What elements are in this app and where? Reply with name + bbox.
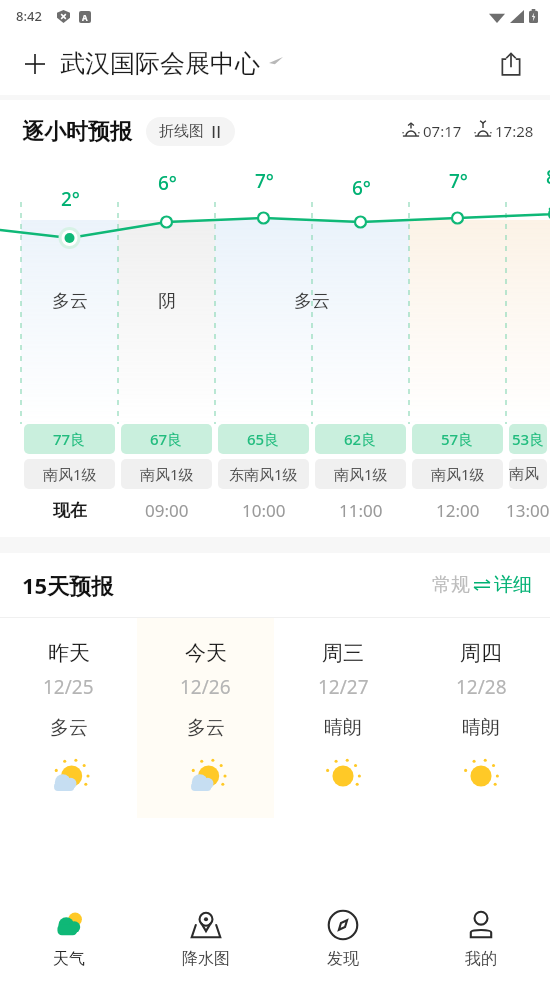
staticText: 昨天 [48,640,90,666]
staticText: 发现 [327,949,359,969]
staticText: 多云 [52,290,88,313]
staticText: 晴朗 [462,716,500,740]
staticText: 南风1级 [140,464,194,484]
staticText: 晴朗 [324,716,362,740]
staticText: 12:00 [436,499,480,522]
staticText: 12/26 [180,674,231,700]
staticText: 11:00 [339,499,383,522]
staticText: A [82,12,88,23]
staticText: 阴 [158,290,176,313]
button[interactable]: 今天 [137,618,274,818]
button[interactable]: 周四 [412,618,550,818]
staticText: 8:42 [16,7,42,25]
button[interactable]: 折线图 [146,117,235,146]
staticText: 详细 [494,573,532,597]
button[interactable]: Share [490,43,532,85]
staticText: 天气 [53,949,85,969]
button[interactable]: 常规 [432,573,532,597]
staticText: 15天预报 [22,570,114,600]
staticText: 10:00 [242,499,286,522]
button[interactable]: 我的 [412,894,550,982]
button[interactable]: 昨天 [0,618,137,818]
staticText: 09:00 [145,499,189,522]
button[interactable]: 周三 [274,618,412,818]
staticText: 武汉国际会展中心 [60,48,260,79]
staticText: 12/28 [456,674,507,700]
button[interactable]: 发现 [274,894,412,982]
staticText: 南风1级 [334,464,388,484]
staticText: 多云 [50,716,88,740]
staticText: 现在 [53,500,87,521]
staticText: 降水图 [182,949,230,969]
button[interactable]: 天气 [0,894,137,982]
staticText: 6° [158,170,177,196]
staticText: 12/27 [318,674,369,700]
staticText: 南风1级 [509,465,547,484]
other: Add city [22,51,48,77]
staticText: 东南风1级 [229,464,298,484]
staticText: 17:28 [495,121,534,141]
staticText: 2° [61,186,80,212]
staticText: 逐小时预报 [22,118,132,146]
staticText: 7° [255,168,274,194]
staticText: 常规 [432,573,470,597]
staticText: 62良 [344,429,377,449]
staticText: 南风1级 [431,464,485,484]
staticText: 13:00 [506,499,550,522]
staticText: 67良 [150,429,183,449]
staticText: 07:17 [423,121,462,141]
staticText: 今天 [185,640,227,666]
staticText: 8° [546,164,550,190]
staticText: 77良 [53,429,86,449]
button[interactable]: 降水图 [137,894,274,982]
button[interactable]: Add city [22,48,283,79]
staticText: 6° [352,175,371,201]
staticText: 我的 [465,949,497,969]
staticText: 53良 [512,429,545,449]
staticText: 周四 [460,640,502,666]
staticText: 南风1级 [43,464,97,484]
staticText: 周三 [322,640,364,666]
staticText: 65良 [247,429,280,449]
staticText: 多云 [294,290,330,313]
staticText: 12/25 [43,674,94,700]
staticText: 7° [449,168,468,194]
staticText: 折线图 [159,122,204,141]
staticText: 57良 [441,429,474,449]
staticText: 多云 [187,716,225,740]
